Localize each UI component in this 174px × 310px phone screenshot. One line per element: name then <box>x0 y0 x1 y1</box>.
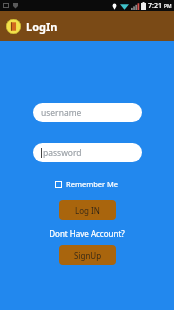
staticText: LogIn <box>26 19 58 34</box>
button[interactable]: App icon <box>6 19 21 34</box>
staticText: 7:21 <box>148 1 162 11</box>
button[interactable]: username <box>33 103 142 122</box>
button[interactable]: Dont Have Account? <box>47 226 127 241</box>
staticText: password <box>43 147 82 159</box>
staticText: PM <box>164 3 172 10</box>
staticText: SignUp <box>74 250 102 261</box>
staticText: Log IN <box>75 205 100 216</box>
button[interactable]: password <box>33 143 142 162</box>
button[interactable]: Log IN <box>59 200 116 220</box>
staticText: username <box>41 107 82 119</box>
button[interactable]: SignUp <box>59 245 116 265</box>
button[interactable]: Remember Me <box>53 177 121 191</box>
staticText: Remember Me <box>66 179 119 189</box>
